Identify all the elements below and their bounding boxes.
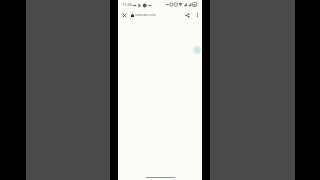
- button[interactable]: Share: [182, 10, 192, 20]
- staticText: 11:26: [122, 2, 132, 7]
- button[interactable]: More options: [192, 10, 202, 20]
- button[interactable]: Close: [119, 10, 129, 20]
- staticText: nexusbev.com: [135, 13, 156, 17]
